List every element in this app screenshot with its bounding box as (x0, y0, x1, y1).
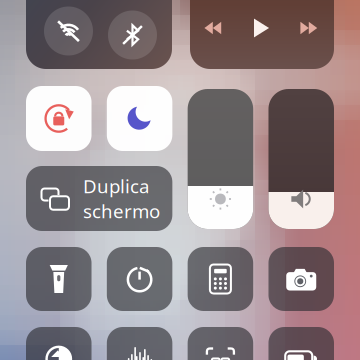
button[interactable]: Non disturbare (107, 86, 172, 151)
button[interactable]: Duplica schermo (26, 166, 172, 231)
button[interactable]: Controllo (26, 327, 91, 360)
button[interactable]: Avanti (291, 11, 327, 45)
button[interactable]: Indietro (195, 11, 231, 45)
button[interactable]: Wi-Fi (44, 6, 93, 55)
button[interactable]: Controllo (268, 247, 334, 311)
button[interactable]: Bluetooth (108, 10, 157, 59)
button[interactable]: Controllo (268, 327, 334, 360)
button[interactable]: Blocco rotazione (26, 86, 91, 151)
button[interactable]: Controllo (188, 327, 253, 360)
button[interactable]: Controllo (26, 247, 91, 311)
button[interactable]: Luminosità (188, 89, 253, 229)
button[interactable]: Volume (268, 89, 334, 229)
button[interactable]: Controllo (107, 327, 172, 360)
button[interactable]: Riproduci (243, 11, 279, 45)
staticText: Duplica schermo (83, 174, 160, 223)
button[interactable]: Controllo (188, 247, 253, 311)
button[interactable]: Controllo (107, 247, 172, 311)
